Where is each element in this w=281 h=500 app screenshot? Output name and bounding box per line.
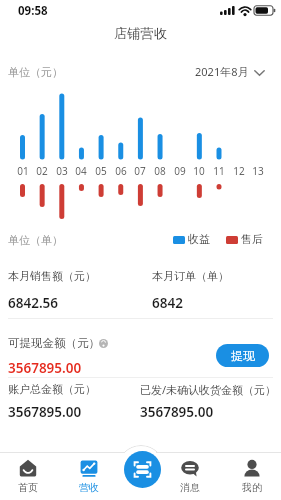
staticText: 可提现金额（元） [8,336,100,350]
staticText: 账户总金额（元） [8,382,96,396]
button[interactable]: 我的 [228,457,276,499]
button[interactable]: 提现 [216,344,269,367]
staticText: 03 [56,164,68,178]
staticText: 我的 [242,481,262,494]
staticText: 收益 [188,232,210,246]
staticText: 11 [213,164,225,178]
button[interactable]: 首页 [4,457,52,499]
staticText: 店铺营收 [114,25,167,42]
button[interactable]: 营收 [65,457,113,499]
staticText: 首页 [18,481,38,494]
staticText: 09 [174,164,186,178]
staticText: 提现 [231,348,255,363]
staticText: 本月订单（单） [152,269,229,283]
staticText: 05 [95,164,107,178]
staticText: 营收 [79,481,99,494]
staticText: 3567895.00 [8,359,82,377]
staticText: 6842 [152,294,183,312]
staticText: 已发/未确认收货金额（元） [140,382,277,397]
staticText: 单位（单） [8,233,63,247]
staticText: 单位（元） [8,65,63,79]
staticText: 10 [193,164,205,178]
staticText: 售后 [241,232,263,246]
button[interactable] [124,451,161,488]
staticText: 12 [233,164,245,178]
staticText: 08 [154,164,166,178]
staticText: 07 [134,164,146,178]
staticText: 2021年8月 [195,64,249,79]
staticText: 04 [75,164,87,178]
staticText: 13 [252,164,264,178]
button[interactable]: 消息 [166,457,214,499]
staticText: 6842.56 [8,294,59,312]
staticText: 09:58 [18,3,48,19]
staticText: 01 [17,164,29,178]
staticText: 消息 [180,481,200,494]
staticText: 02 [36,164,48,178]
staticText: 本月销售额（元） [8,269,96,283]
staticText: 3567895.00 [140,403,214,421]
staticText: 06 [115,164,127,178]
staticText: 3567895.00 [8,403,82,421]
